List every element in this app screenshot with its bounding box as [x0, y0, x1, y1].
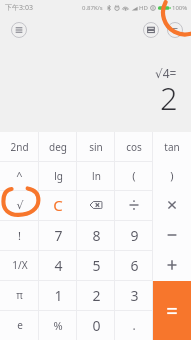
- button[interactable]: [153, 310, 191, 340]
- staticText: tan: [164, 140, 180, 154]
- staticText: 4: [54, 256, 63, 275]
- staticText: cos: [126, 140, 142, 154]
- button[interactable]: ): [153, 161, 191, 190]
- button[interactable]: %: [39, 310, 77, 340]
- staticText: ^: [16, 168, 23, 183]
- staticText: HD: [139, 4, 148, 12]
- staticText: π: [16, 288, 23, 302]
- staticText: 8: [92, 226, 101, 245]
- staticText: 9: [130, 226, 139, 245]
- staticText: e: [17, 318, 23, 332]
- button[interactable]: 3: [115, 280, 153, 310]
- staticText: 5: [92, 256, 101, 275]
- button[interactable]: π: [0, 280, 39, 310]
- staticText: 1: [54, 286, 63, 305]
- button[interactable]: .: [115, 310, 153, 340]
- button[interactable]: sin: [77, 132, 115, 161]
- button[interactable]: [153, 250, 191, 280]
- button[interactable]: 6: [115, 250, 153, 280]
- button[interactable]: [153, 280, 191, 310]
- staticText: %: [53, 318, 63, 333]
- button[interactable]: √: [0, 190, 39, 220]
- staticText: (: [132, 168, 136, 183]
- button[interactable]: cos: [115, 132, 153, 161]
- button[interactable]: Calculator mode: [143, 22, 159, 38]
- button[interactable]: 0: [77, 310, 115, 340]
- staticText: lg: [54, 169, 63, 183]
- button[interactable]: e: [0, 310, 39, 340]
- button[interactable]: History: [11, 22, 27, 38]
- button[interactable]: ^: [0, 161, 39, 190]
- staticText: 2: [160, 77, 178, 119]
- button[interactable]: [115, 190, 153, 220]
- button[interactable]: [77, 190, 115, 220]
- button[interactable]: 2nd: [0, 132, 39, 161]
- button[interactable]: Equals: [153, 281, 191, 340]
- button[interactable]: tan: [153, 132, 191, 161]
- button[interactable]: 1: [39, 280, 77, 310]
- staticText: 2: [92, 286, 101, 305]
- staticText: ln: [92, 169, 101, 183]
- staticText: deg: [49, 140, 67, 154]
- staticText: 6: [130, 256, 139, 275]
- button[interactable]: 5: [77, 250, 115, 280]
- staticText: !: [18, 228, 21, 243]
- staticText: √4=: [155, 65, 177, 81]
- button[interactable]: 1/X: [0, 250, 39, 280]
- button[interactable]: [153, 220, 191, 250]
- staticText: ): [170, 168, 174, 183]
- button[interactable]: (: [115, 161, 153, 190]
- staticText: 7: [54, 226, 63, 245]
- button[interactable]: 4: [39, 250, 77, 280]
- button[interactable]: 7: [39, 220, 77, 250]
- button[interactable]: [153, 190, 191, 220]
- button[interactable]: C: [39, 190, 77, 220]
- button[interactable]: lg: [39, 161, 77, 190]
- button[interactable]: !: [0, 220, 39, 250]
- button[interactable]: Unit converter: [167, 22, 183, 38]
- button[interactable]: ln: [77, 161, 115, 190]
- button[interactable]: 9: [115, 220, 153, 250]
- staticText: 3: [130, 286, 139, 305]
- staticText: 2nd: [10, 140, 29, 154]
- staticText: 0: [92, 316, 101, 335]
- staticText: 1/X: [12, 258, 28, 272]
- staticText: 下午3:03: [5, 3, 33, 13]
- staticText: √: [16, 199, 24, 212]
- staticText: .: [132, 317, 136, 333]
- staticText: C: [53, 195, 63, 215]
- staticText: sin: [89, 140, 103, 154]
- button[interactable]: 2: [77, 280, 115, 310]
- staticText: 0.87K/s: [82, 4, 103, 12]
- button[interactable]: 8: [77, 220, 115, 250]
- button[interactable]: deg: [39, 132, 77, 161]
- staticText: 100%: [172, 4, 188, 12]
